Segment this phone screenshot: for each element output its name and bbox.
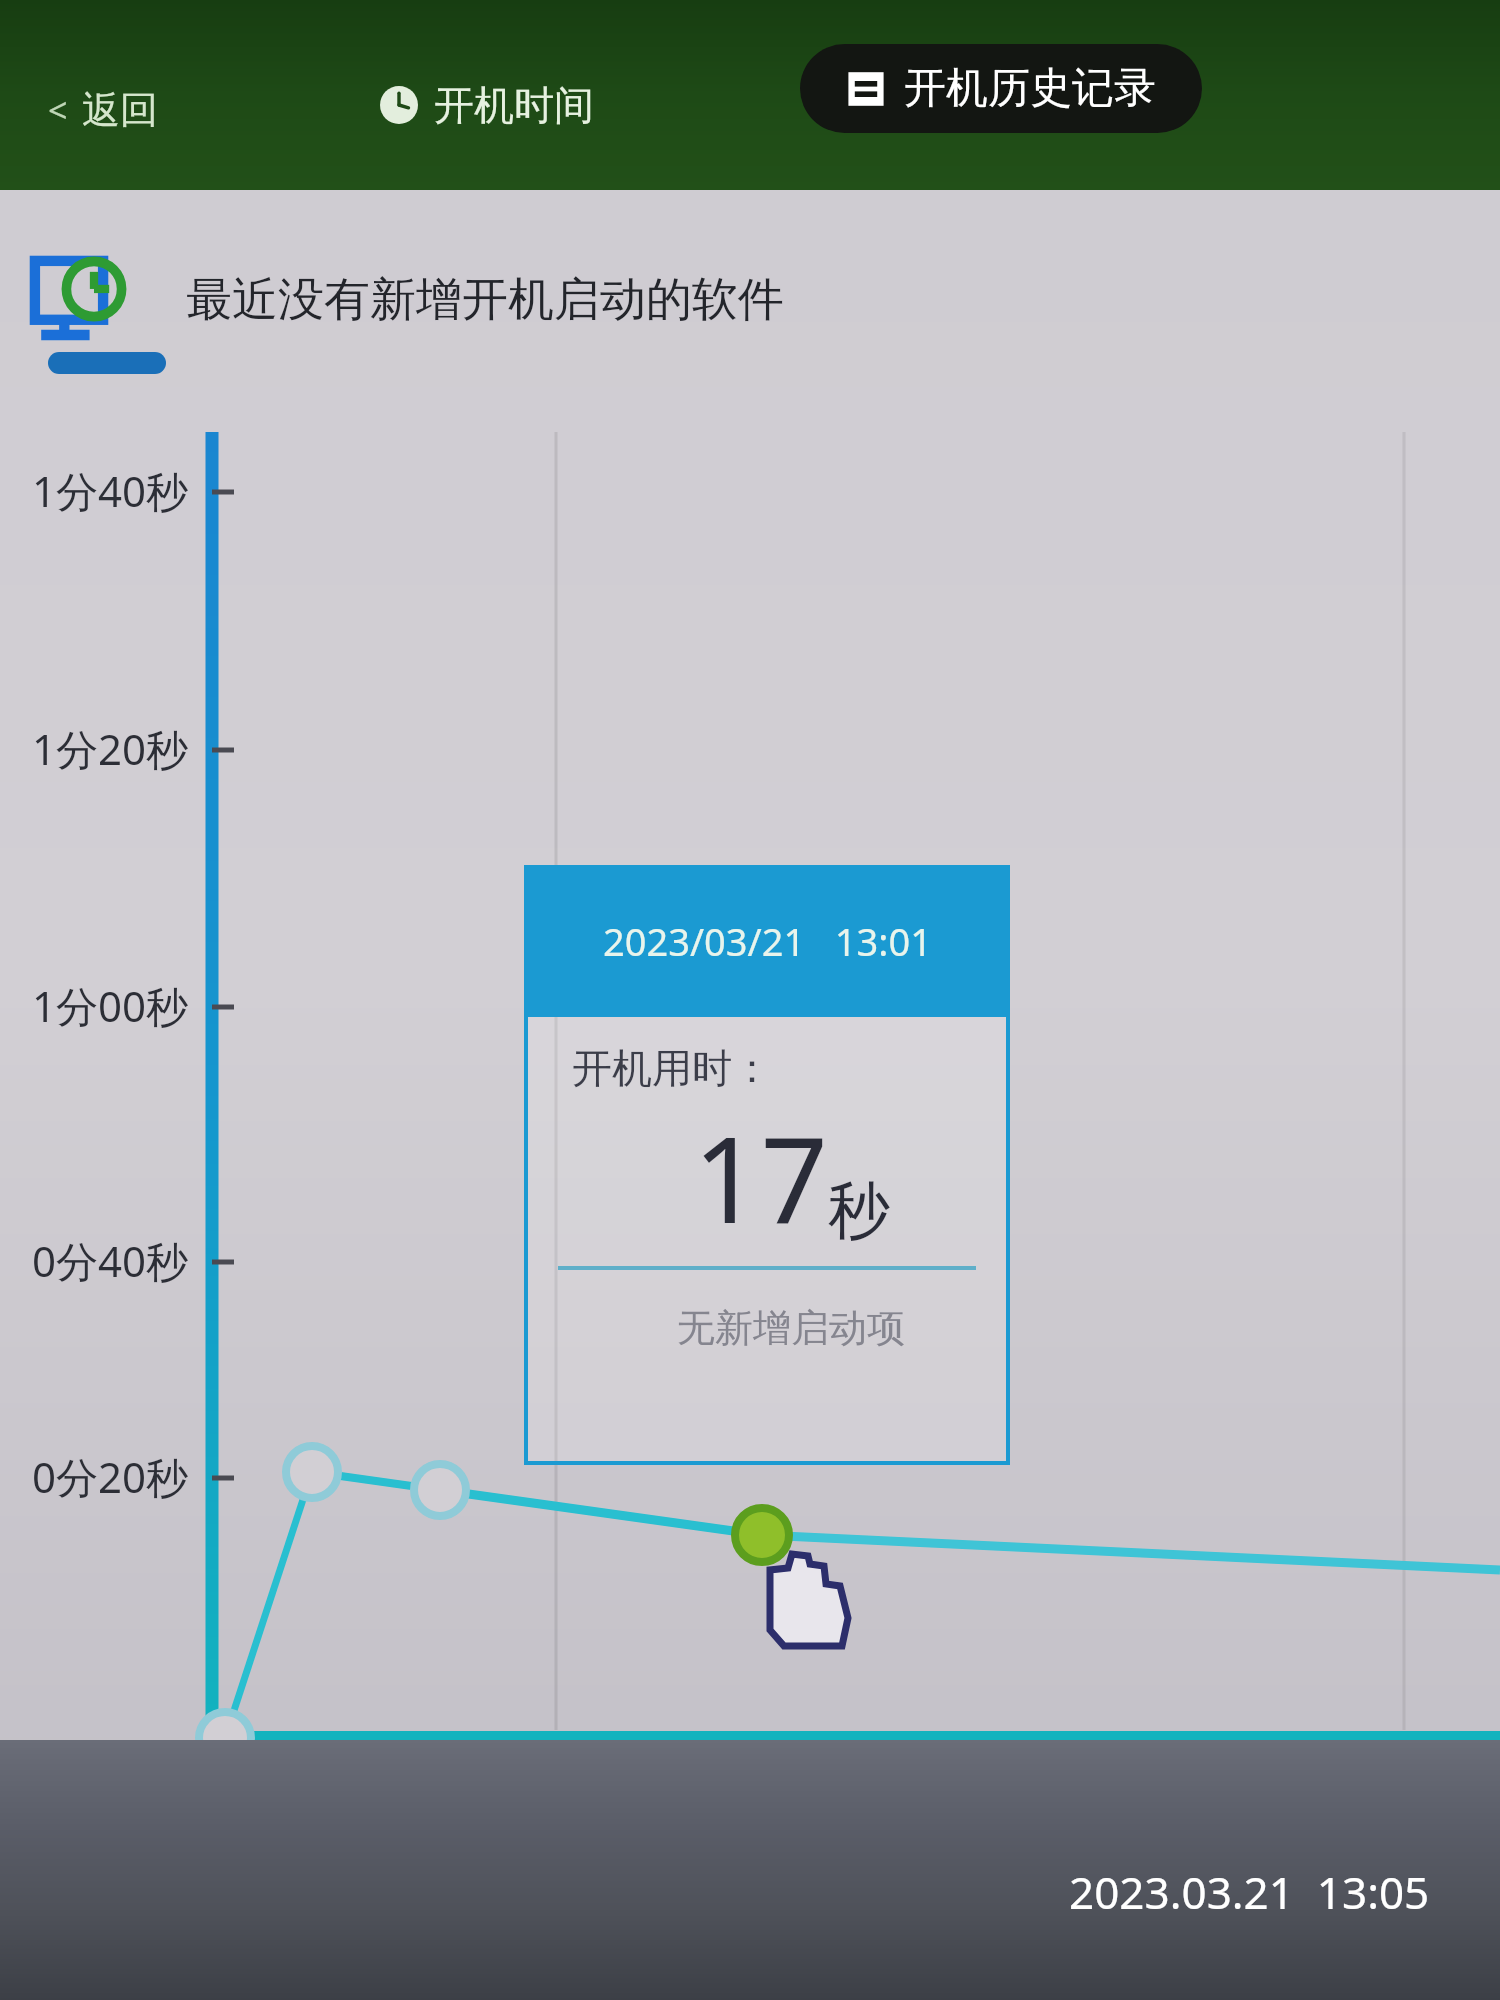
other: Startup clock (28, 254, 138, 346)
staticText: 1分20秒 (0, 720, 188, 777)
staticText: 开机时间 (434, 80, 594, 130)
button[interactable]: 2023/03/21 13:01 (524, 865, 1010, 1465)
button[interactable]: Startup clock (22, 248, 790, 352)
button[interactable]: 开机历史记录 (800, 44, 1202, 133)
button[interactable]: < (40, 80, 166, 140)
staticText: 0分20秒 (0, 1448, 188, 1505)
staticText: 17 (693, 1097, 828, 1258)
staticText: 最近没有新增开机启动的软件 (186, 271, 784, 329)
staticText: < (48, 87, 68, 133)
button[interactable]: 开机时间 (360, 68, 614, 142)
staticText: 返回 (82, 86, 158, 134)
staticText: 开机历史记录 (904, 62, 1156, 115)
staticText: 2023.03.21 13:05 (1069, 1862, 1430, 1922)
staticText: 开机用时： (572, 1043, 772, 1093)
staticText: 1分00秒 (0, 977, 188, 1034)
staticText: 0分40秒 (0, 1232, 188, 1289)
staticText: 2023/03/21 13:01 (603, 915, 932, 967)
staticText: 1分40秒 (0, 462, 188, 519)
staticText: 秒 (828, 1172, 890, 1250)
staticText: 无新增启动项 (677, 1304, 905, 1352)
